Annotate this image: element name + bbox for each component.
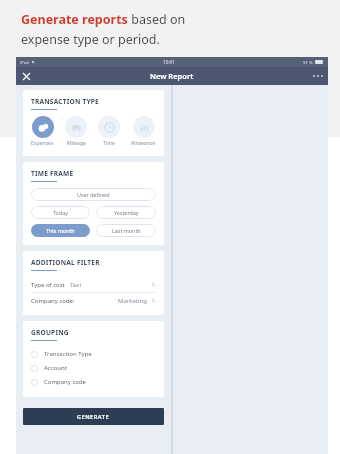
button[interactable]: Yesterday	[96, 206, 156, 219]
staticText: expense type or period.	[21, 31, 160, 48]
staticText: Type of cost	[31, 281, 65, 289]
staticText: Account	[44, 364, 67, 372]
button[interactable]: Type of cost	[31, 277, 156, 292]
button[interactable]: This month	[31, 224, 90, 237]
staticText: Allowance	[131, 140, 156, 147]
staticText: Company code:	[31, 297, 75, 305]
button[interactable]: Allowance	[131, 116, 156, 147]
staticText: Yesterday	[114, 209, 139, 216]
button[interactable]: Company code:	[31, 293, 156, 308]
staticText: iPad	[20, 59, 29, 65]
staticText: New Report	[150, 71, 194, 81]
staticText: 91 %	[303, 59, 313, 65]
button[interactable]: More options	[311, 69, 325, 83]
staticText: This month	[46, 227, 75, 234]
staticText: based on	[128, 11, 186, 28]
button[interactable]: Last month	[96, 224, 156, 237]
staticText: Taxi	[70, 281, 81, 289]
staticText: 15:41	[163, 59, 175, 65]
staticText: Transaction Type	[44, 350, 92, 358]
button[interactable]: Mileage	[65, 116, 87, 147]
button[interactable]: Close	[19, 69, 33, 83]
button[interactable]: Today	[31, 206, 90, 219]
button[interactable]: Transaction Type	[31, 347, 156, 361]
button[interactable]: Expenses	[31, 116, 54, 147]
button[interactable]: Time	[98, 116, 120, 147]
staticText: Marketing	[118, 297, 147, 305]
staticText: GENERATE	[77, 413, 110, 421]
staticText: Generate reports	[21, 11, 128, 28]
button[interactable]: User defined	[31, 188, 156, 201]
staticText: Last month	[112, 227, 141, 234]
button[interactable]: GENERATE	[23, 408, 164, 425]
staticText: Company code	[44, 378, 87, 386]
staticText: Expenses	[31, 140, 54, 147]
staticText: TRANSACTION TYPE	[31, 97, 99, 106]
staticText: Mileage	[67, 140, 86, 147]
staticText: Today	[53, 209, 68, 216]
staticText: TIME FRAME	[31, 169, 74, 178]
staticText: GROUPING	[31, 328, 69, 337]
staticText: ADDITIONAL FILTER	[31, 258, 100, 267]
staticText: Time	[103, 140, 115, 147]
button[interactable]: Account	[31, 361, 156, 375]
staticText: User defined	[77, 191, 110, 198]
button[interactable]: Company code	[31, 375, 156, 389]
